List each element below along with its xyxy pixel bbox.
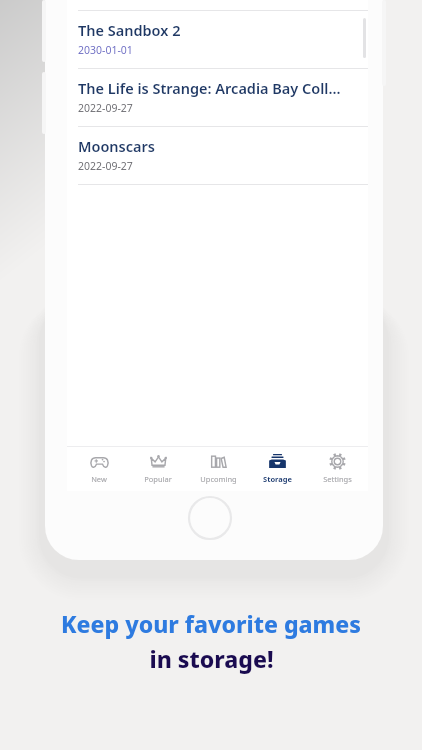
staticText: The Life is Strange: Arcadia Bay Coll… (78, 78, 341, 98)
staticText: Popular (144, 474, 172, 484)
button[interactable]: Settings (309, 447, 365, 490)
staticText: Storage (263, 474, 292, 484)
button[interactable]: Storage (249, 447, 305, 490)
button[interactable]: Upcoming (190, 447, 246, 490)
button[interactable]: Popular (130, 447, 186, 490)
button[interactable]: The Life is Strange: Arcadia Bay Coll… (67, 69, 368, 126)
staticText: Keep your favorite games (61, 608, 361, 639)
staticText: New (91, 474, 107, 484)
staticText: 2030-01-01 (78, 43, 133, 57)
button[interactable]: The Sandbox 2 (67, 11, 368, 68)
staticText: Upcoming (200, 474, 237, 484)
button[interactable]: Moonscars (67, 127, 368, 184)
staticText: The Sandbox 2 (78, 20, 181, 40)
staticText: in storage! (149, 643, 274, 674)
staticText: 2022-09-27 (78, 101, 133, 115)
button[interactable]: New (71, 447, 127, 490)
staticText: 2022-09-27 (78, 159, 133, 173)
staticText: Moonscars (78, 136, 155, 156)
staticText: Settings (323, 474, 352, 484)
